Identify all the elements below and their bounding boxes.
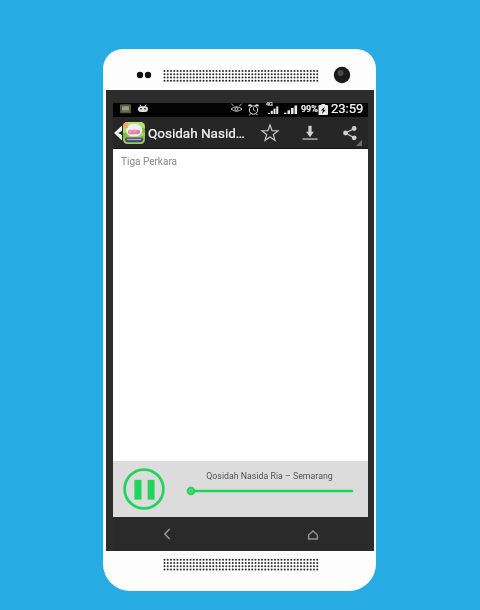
- button[interactable]: Back: [156, 523, 178, 545]
- button[interactable]: Favorite: [261, 124, 279, 142]
- staticText: 23:59: [331, 101, 364, 115]
- button[interactable]: Qosidah Nasid…: [114, 117, 245, 148]
- button[interactable]: Share: [342, 125, 358, 141]
- button[interactable]: Home: [302, 524, 324, 546]
- staticText: 4G: [266, 101, 273, 107]
- staticText: Tiga Perkara: [121, 156, 178, 168]
- staticText: 99%: [301, 104, 318, 115]
- staticText: Qosidah Nasida Ria – Semarang: [186, 471, 353, 481]
- staticText: Qosidah Nasid…: [148, 125, 245, 141]
- button[interactable]: Pause: [121, 466, 167, 512]
- button[interactable]: Download: [302, 125, 318, 141]
